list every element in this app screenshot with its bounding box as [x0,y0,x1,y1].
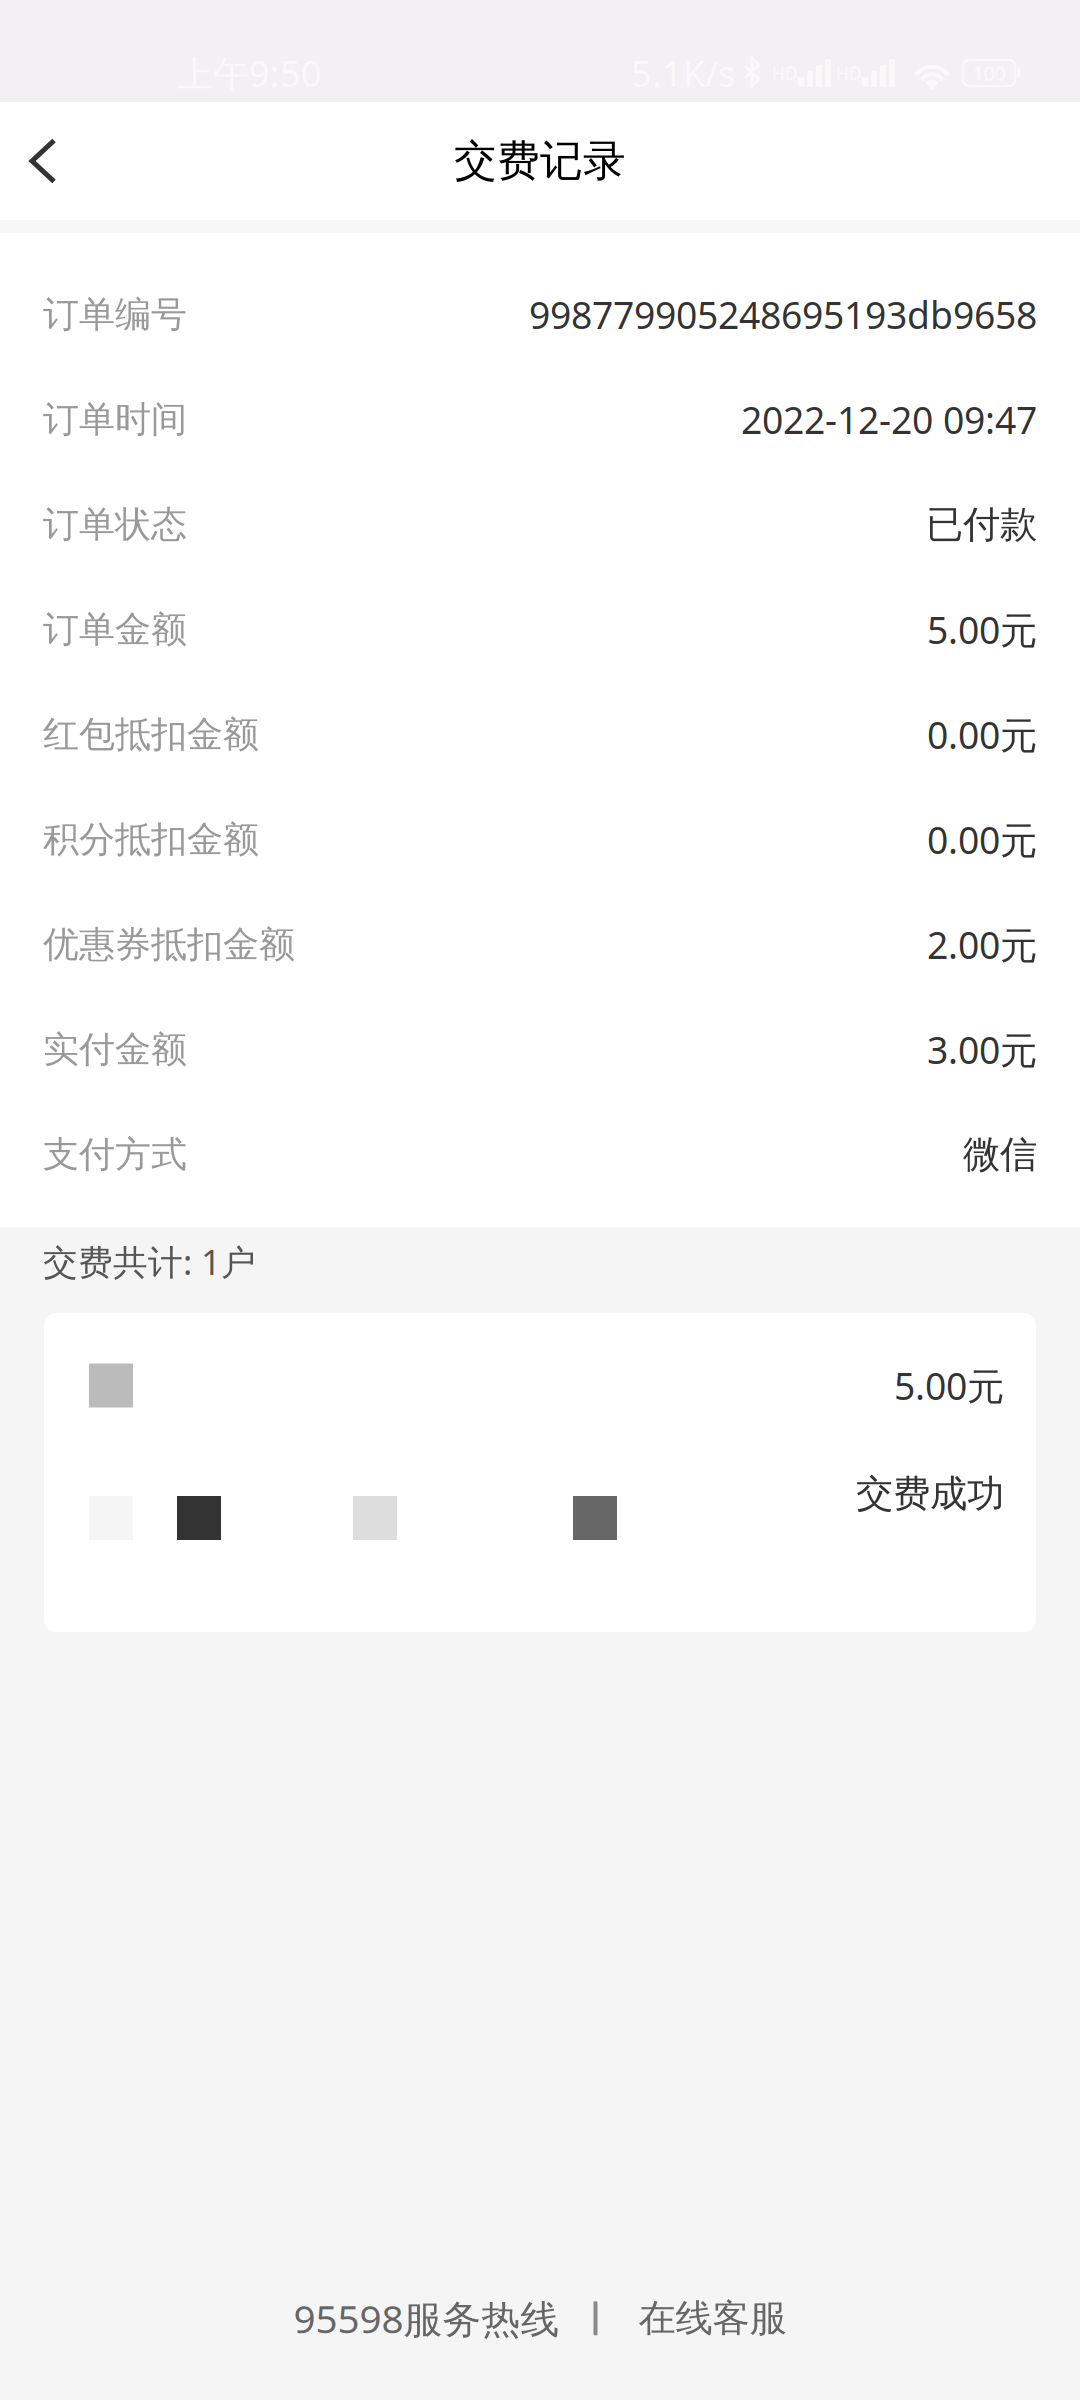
staticText: 在线客服 [638,2295,786,2341]
staticText: 2.00元 [927,920,1037,969]
staticText: 支付方式 [43,1132,187,1177]
button[interactable]: 在线客服 [597,2281,786,2355]
button[interactable]: 5.00元 [44,1313,1036,1632]
staticText: 积分抵扣金额 [43,817,259,862]
staticText: 5.00元 [927,605,1037,654]
staticText: 订单编号 [43,292,187,337]
staticText: 95598服务热线 [293,2293,559,2344]
staticText: 已付款 [926,502,1037,547]
staticText: 微信 [963,1132,1037,1177]
staticText: 订单金额 [43,607,187,652]
staticText: 交费记录 [454,135,626,187]
staticText: 红包抵扣金额 [43,712,259,757]
staticText: 实付金额 [43,1027,187,1072]
staticText: 3.00元 [927,1025,1037,1074]
staticText: 交费共计: 1户 [43,1238,256,1284]
staticText: 0.00元 [927,815,1037,864]
staticText: 2022-12-20 09:47 [741,395,1037,444]
staticText: 5.00元 [894,1361,1004,1410]
staticText: 998779905248695193db9658 [529,290,1037,339]
staticText: 100 [972,60,1005,86]
staticText: 订单状态 [43,502,187,547]
staticText: 交费成功 [856,1471,1004,1517]
staticText: 优惠券抵扣金额 [43,922,295,967]
button[interactable]: 95598服务热线 [293,2279,593,2358]
staticText: 0.00元 [927,710,1037,759]
staticText: 订单时间 [43,397,187,442]
button[interactable]: 返回 [0,102,86,220]
